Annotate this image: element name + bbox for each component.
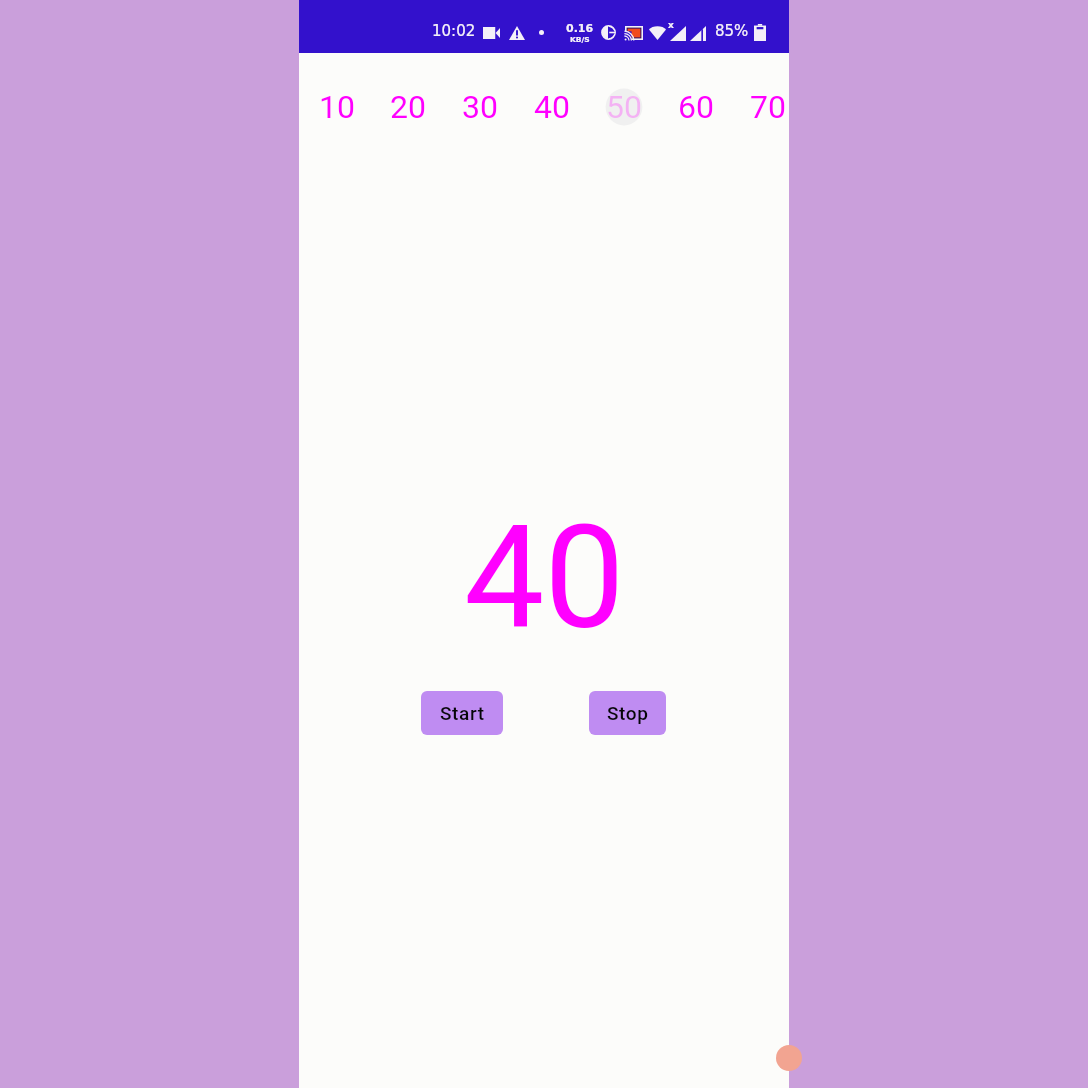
staticText: Stop [607, 702, 649, 724]
other: Battery 85 percent [754, 24, 766, 41]
staticText: 10 [319, 88, 355, 126]
button[interactable]: 20 [378, 77, 438, 137]
other: Mobile signal SIM 1 [670, 26, 686, 41]
button[interactable]: 10 [307, 77, 367, 137]
button[interactable]: Stop [589, 691, 666, 735]
button[interactable]: 70 [738, 77, 798, 137]
other: Cast screen [625, 26, 643, 40]
button[interactable]: 40 [522, 77, 582, 137]
button[interactable]: 30 [450, 77, 510, 137]
staticText: 40 [534, 88, 570, 126]
staticText: 10:02 [432, 22, 476, 39]
staticText: 60 [678, 88, 714, 126]
staticText: 50 [606, 88, 642, 126]
button[interactable]: Start [421, 691, 503, 735]
other: Warning [509, 26, 525, 40]
other: Location [601, 25, 616, 40]
staticText: 30 [462, 88, 498, 126]
staticText: x [668, 20, 674, 30]
staticText: KB/S [570, 35, 590, 44]
staticText: 85% [715, 22, 749, 39]
other: Mobile signal SIM 2 [690, 26, 706, 41]
staticText: Start [440, 702, 485, 724]
button[interactable]: 60 [666, 77, 726, 137]
button[interactable]: 50 [594, 77, 654, 137]
staticText: 0.16 [566, 22, 594, 35]
other: Screen recording [483, 27, 500, 39]
staticText: 70 [750, 88, 786, 126]
button[interactable]: Assistant bubble [776, 1045, 802, 1071]
other: Wi-Fi [649, 25, 666, 40]
staticText: 20 [390, 88, 426, 126]
staticText: 40 [464, 494, 625, 662]
